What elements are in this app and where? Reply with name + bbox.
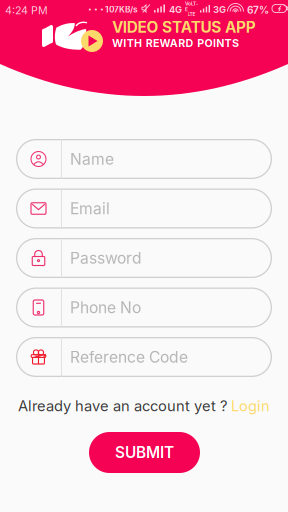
button[interactable]: Reference Code [16,337,272,377]
button[interactable]: Password [16,238,272,278]
staticText: • • • [88,5,104,13]
staticText: 67% [247,4,269,16]
button[interactable]: Email [16,188,272,228]
staticText: Already have an account yet ? [18,397,227,415]
staticText: Password [70,249,142,267]
button[interactable]: Login [231,397,270,415]
staticText: 3G [213,4,226,15]
staticText: Name [70,150,114,168]
button[interactable]: Name [16,139,272,179]
staticText: Email [70,199,110,218]
staticText: Login [231,397,270,415]
staticText: VIDEO STATUS APP [112,18,256,37]
staticText: VoLTE [185,1,198,12]
button[interactable]: Phone No [16,287,272,327]
staticText: 4:24 PM [5,4,48,17]
button[interactable]: SUBMIT [89,432,200,473]
staticText: Reference Code [70,348,188,366]
staticText: WITH REWARD POINTS [112,37,239,49]
staticText: SUBMIT [115,443,174,462]
staticText: Phone No [70,298,141,317]
staticText: 107KB/s [105,4,138,14]
staticText: 4G [169,4,182,15]
staticText: LTE [187,11,195,17]
